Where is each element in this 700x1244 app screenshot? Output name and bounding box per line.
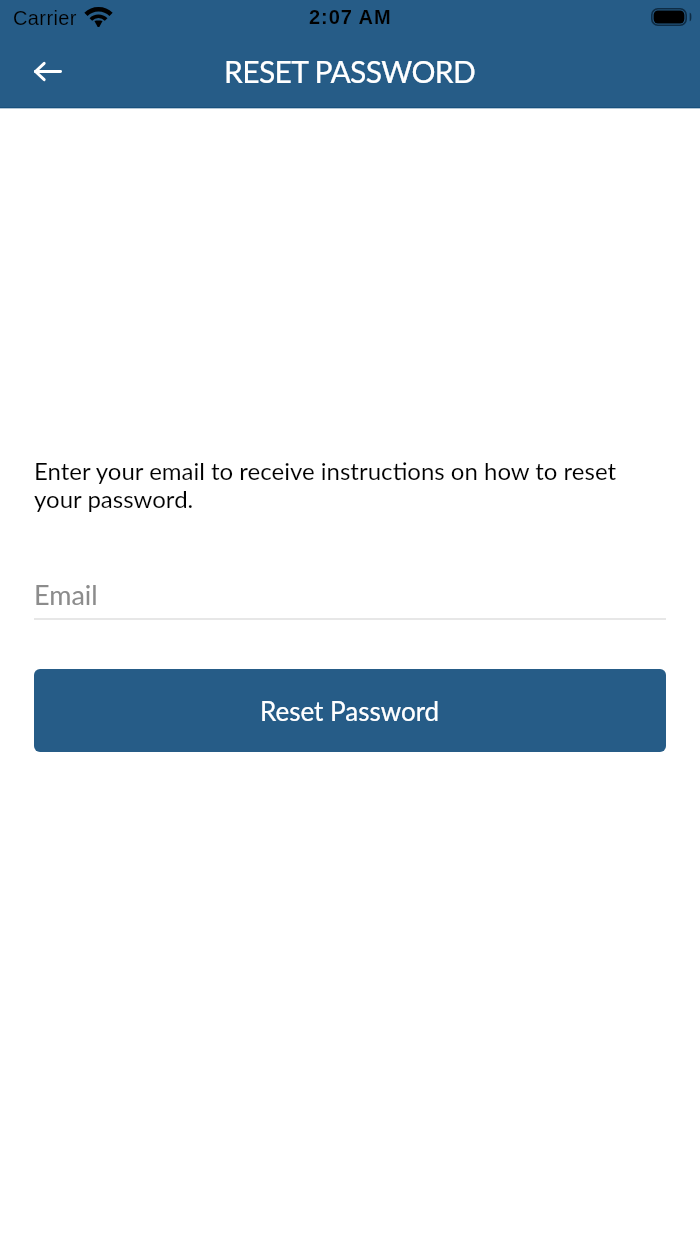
- button[interactable]: Reset Password: [34, 669, 666, 752]
- staticText: Email: [34, 578, 98, 610]
- staticText: Enter your email to receive instructions…: [34, 456, 666, 514]
- button[interactable]: Email: [34, 578, 666, 620]
- staticText: RESET PASSWORD: [224, 53, 476, 89]
- staticText: Reset Password: [260, 695, 440, 726]
- staticText: Carrier: [13, 7, 77, 29]
- button[interactable]: Back: [20, 43, 76, 99]
- staticText: 2:07 AM: [309, 6, 392, 28]
